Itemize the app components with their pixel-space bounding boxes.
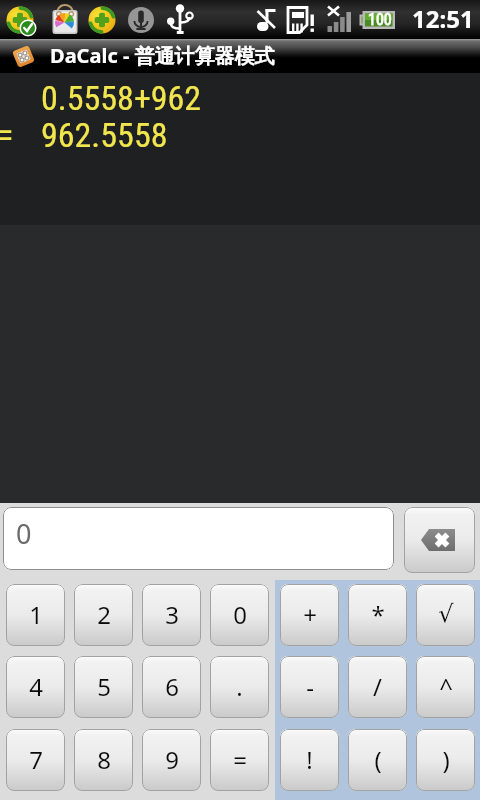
staticText: 2: [97, 598, 111, 631]
staticText: *: [371, 598, 385, 631]
staticText: +: [303, 598, 317, 631]
staticText: 7: [29, 743, 43, 776]
button[interactable]: √: [416, 584, 475, 646]
staticText: 12:51: [412, 2, 474, 35]
other: Backspace: [404, 507, 475, 573]
button[interactable]: 9: [142, 729, 201, 791]
button[interactable]: 2: [74, 584, 133, 646]
staticText: 0.5558+962: [41, 78, 202, 118]
staticText: 9: [165, 743, 179, 776]
button[interactable]: 1: [6, 584, 65, 646]
button[interactable]: 8: [74, 729, 133, 791]
staticText: 0: [233, 598, 247, 631]
button[interactable]: 4: [6, 656, 65, 718]
button[interactable]: 5: [74, 656, 133, 718]
staticText: ^: [439, 670, 453, 703]
button[interactable]: Backspace: [404, 507, 475, 573]
button[interactable]: /: [348, 656, 407, 718]
button[interactable]: (: [348, 729, 407, 791]
button[interactable]: +: [280, 584, 339, 646]
button[interactable]: 0: [3, 507, 394, 570]
staticText: ): [442, 743, 450, 776]
staticText: 962.5558: [41, 115, 168, 155]
staticText: 1: [29, 598, 43, 631]
staticText: DaCalc - 普通计算器模式: [50, 42, 275, 69]
staticText: 0: [16, 515, 32, 552]
staticText: 4: [29, 670, 43, 703]
staticText: 3: [165, 598, 179, 631]
button[interactable]: ^: [416, 656, 475, 718]
button[interactable]: 6: [142, 656, 201, 718]
staticText: 6: [165, 670, 179, 703]
staticText: 5: [97, 670, 111, 703]
button[interactable]: *: [348, 584, 407, 646]
staticText: (: [374, 743, 382, 776]
staticText: .: [236, 670, 243, 703]
button[interactable]: ): [416, 729, 475, 791]
staticText: -: [306, 670, 314, 703]
staticText: /: [373, 670, 382, 703]
button[interactable]: .: [210, 656, 269, 718]
button[interactable]: 7: [6, 729, 65, 791]
staticText: =: [233, 743, 247, 776]
button[interactable]: 0: [210, 584, 269, 646]
staticText: √: [438, 600, 454, 628]
staticText: =: [0, 115, 14, 155]
button[interactable]: 3: [142, 584, 201, 646]
staticText: !: [306, 743, 313, 776]
staticText: 100: [368, 10, 392, 29]
button[interactable]: -: [280, 656, 339, 718]
staticText: 8: [97, 743, 111, 776]
button[interactable]: !: [280, 729, 339, 791]
button[interactable]: =: [210, 729, 269, 791]
